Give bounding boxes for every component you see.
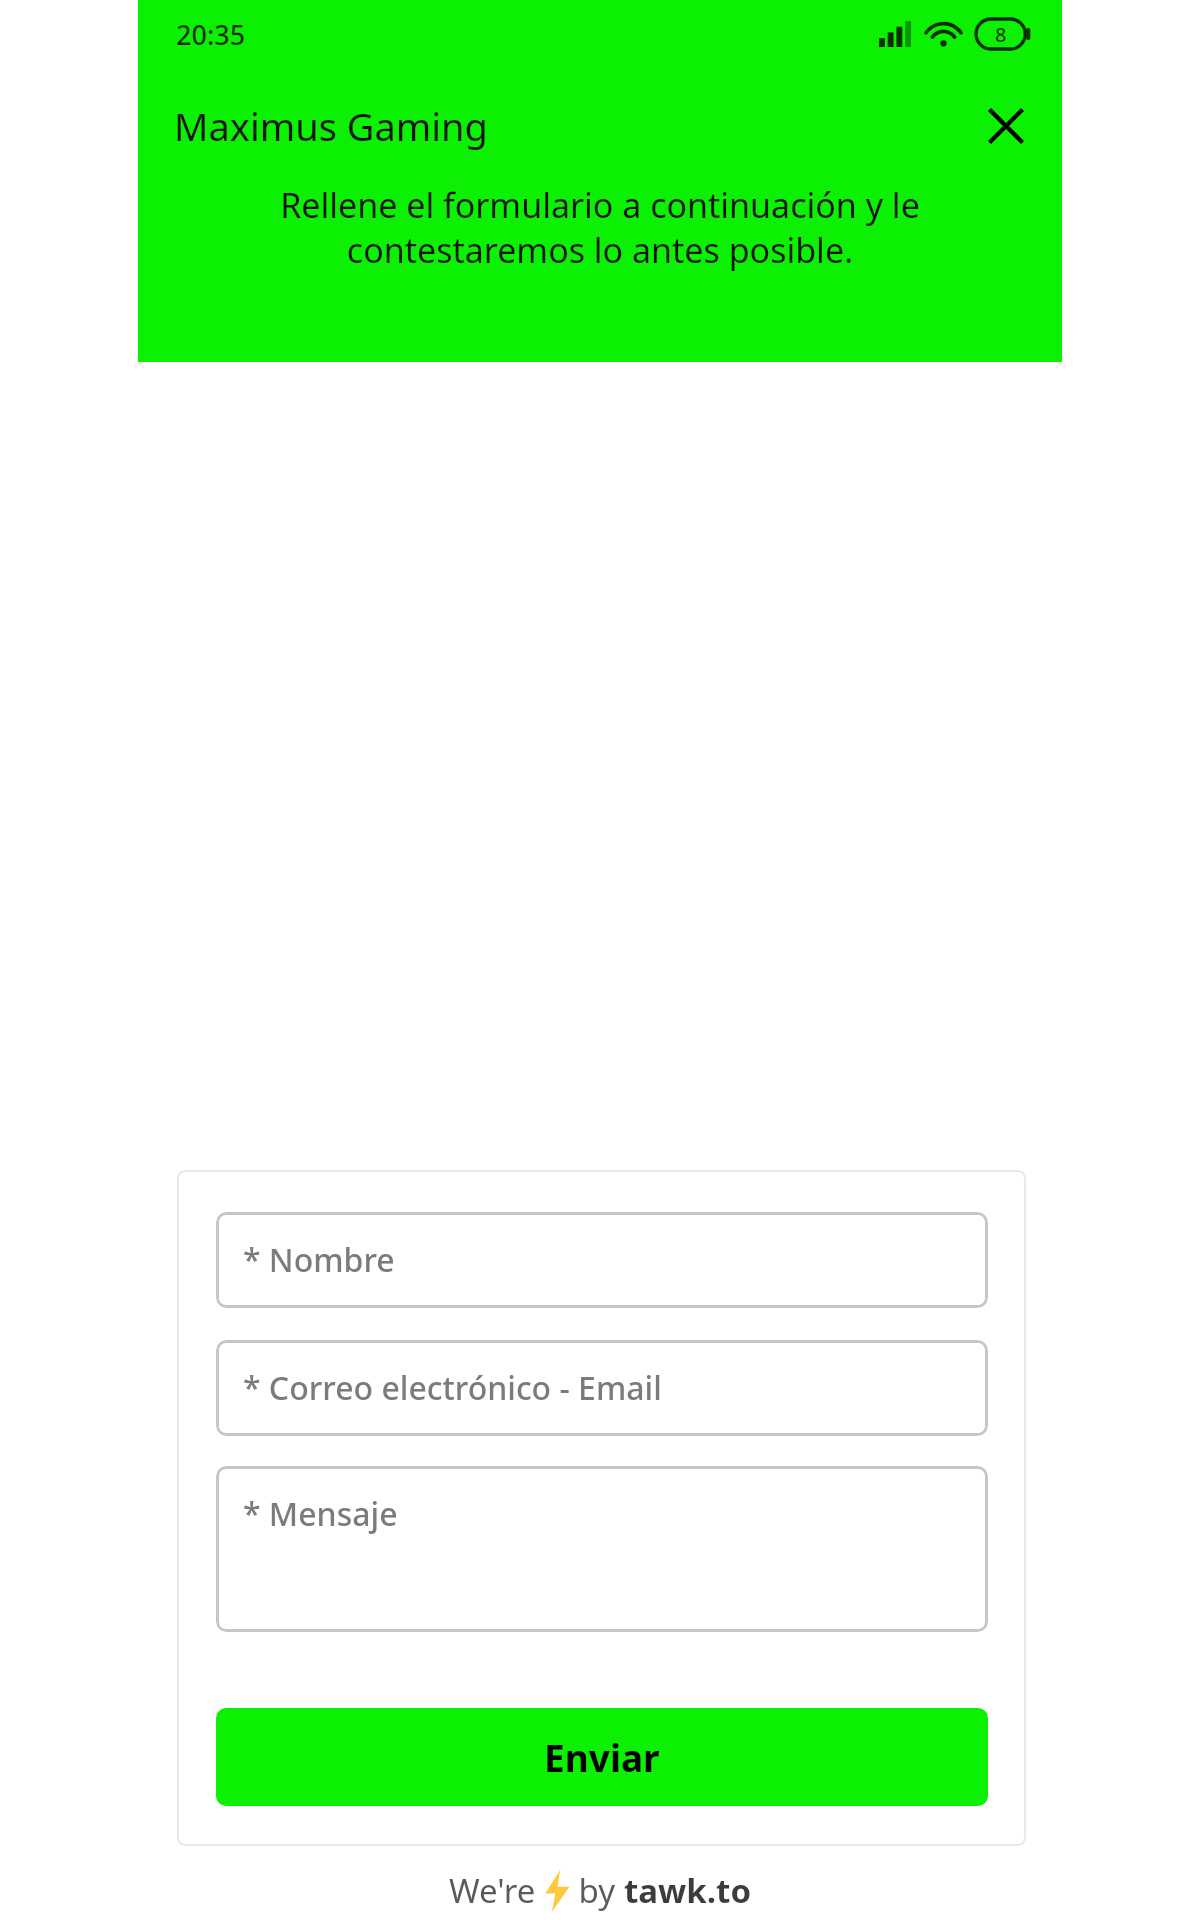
staticText: * Correo electrónico - Email [243, 1366, 662, 1410]
button[interactable]: * Correo electrónico - Email [216, 1340, 988, 1436]
button[interactable]: Maximus Gaming [174, 100, 488, 152]
staticText: by [570, 1868, 624, 1913]
button[interactable]: Enviar [216, 1708, 988, 1806]
staticText: * Mensaje [243, 1492, 398, 1536]
button[interactable]: * Nombre [216, 1212, 988, 1308]
button[interactable]: We're [449, 1868, 752, 1913]
staticText: Rellene el formulario a continuación y l… [172, 182, 1028, 273]
staticText: 20:35 [176, 16, 246, 53]
staticText: * Nombre [243, 1238, 395, 1282]
button[interactable]: * Mensaje [216, 1466, 988, 1632]
button[interactable]: Close [976, 98, 1036, 154]
staticText: We're [449, 1868, 544, 1913]
staticText: 8 [995, 21, 1007, 48]
staticText: tawk.to [624, 1868, 752, 1913]
staticText: Enviar [544, 1732, 660, 1782]
